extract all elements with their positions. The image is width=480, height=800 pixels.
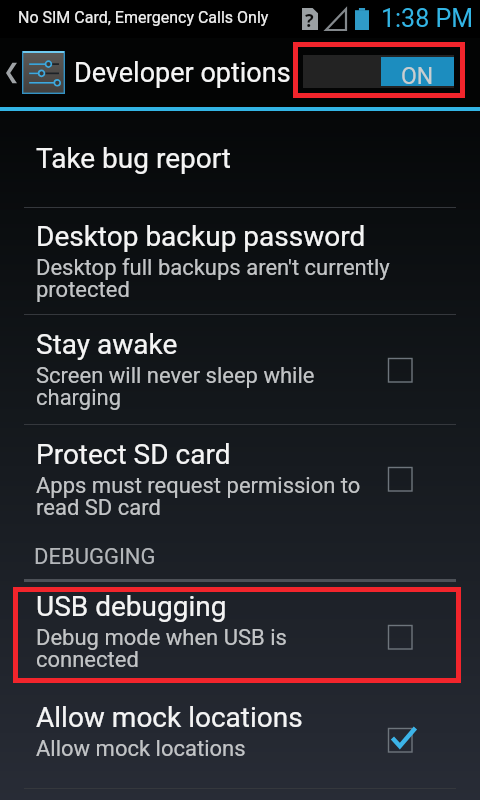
staticText: Debug mode when USB is connected	[36, 625, 376, 673]
button[interactable]: Developer options on	[303, 55, 454, 88]
button[interactable]: Desktop backup password	[0, 208, 480, 313]
button[interactable]: Stay awake	[383, 353, 417, 387]
staticText: USB debugging	[36, 590, 227, 623]
staticText: Allow mock locations	[36, 701, 303, 734]
button[interactable]: Allow mock locations	[383, 723, 417, 757]
button[interactable]: Navigate up	[0, 38, 22, 107]
button[interactable]: USB debugging	[383, 620, 417, 654]
button[interactable]: USB debugging	[0, 578, 480, 683]
staticText: 1:38 PM	[381, 4, 474, 33]
staticText: Protect SD card	[36, 438, 231, 471]
button[interactable]: Protect SD card	[383, 462, 417, 496]
button[interactable]: Stay awake	[0, 316, 480, 421]
button[interactable]: Take bug report	[0, 130, 480, 185]
button[interactable]: Allow mock locations	[0, 689, 480, 772]
staticText: Apps must request permission to read SD …	[36, 473, 376, 521]
staticText: Desktop backup password	[36, 220, 366, 253]
staticText: Desktop full backups aren't currently pr…	[36, 255, 396, 303]
staticText: Screen will never sleep while charging	[36, 363, 376, 411]
staticText: DEBUGGING	[34, 544, 156, 570]
staticText: ON	[401, 63, 434, 90]
staticText: Take bug report	[36, 142, 232, 175]
staticText: Allow mock locations	[36, 736, 246, 762]
staticText: ?	[305, 8, 314, 33]
staticText: Stay awake	[36, 328, 178, 361]
staticText: Developer options	[74, 57, 291, 89]
staticText: No SIM Card, Emergency Calls Only	[18, 8, 269, 27]
button[interactable]: Protect SD card	[0, 426, 480, 531]
